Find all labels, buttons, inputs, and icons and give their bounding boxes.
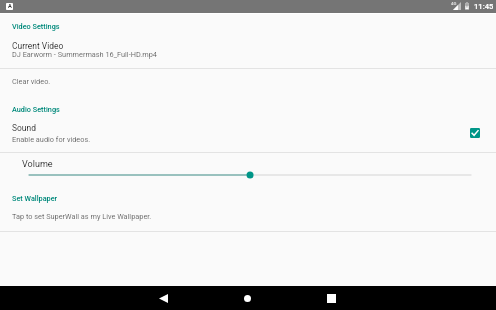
other: Sound enabled xyxy=(470,128,480,138)
staticText: 11:45 xyxy=(474,2,494,11)
staticText: Set Wallpaper xyxy=(12,194,58,203)
staticText: Volume xyxy=(22,159,53,170)
button[interactable]: Home xyxy=(235,286,259,310)
button[interactable]: Clear video. xyxy=(0,69,496,94)
staticText: A xyxy=(8,3,12,10)
button[interactable]: Volume xyxy=(0,153,496,185)
button[interactable]: Back xyxy=(151,286,175,310)
button[interactable]: Current Video xyxy=(0,37,496,67)
staticText: Current Video xyxy=(12,41,64,51)
staticText: Clear video. xyxy=(12,77,51,86)
button[interactable]: Recent apps xyxy=(319,286,343,310)
button[interactable]: Sound xyxy=(0,118,496,151)
staticText: DJ Earworm - Summermash 16_Full-HD.mp4 xyxy=(12,50,157,59)
staticText: 4G xyxy=(451,1,457,6)
staticText: Sound xyxy=(12,123,36,133)
staticText: Enable audio for videos. xyxy=(12,135,91,144)
button[interactable]: Tap to set SuperWall as my Live Wallpape… xyxy=(0,205,496,231)
staticText: Tap to set SuperWall as my Live Wallpape… xyxy=(12,212,152,221)
staticText: Audio Settings xyxy=(12,105,60,114)
staticText: Video Settings xyxy=(12,22,60,31)
